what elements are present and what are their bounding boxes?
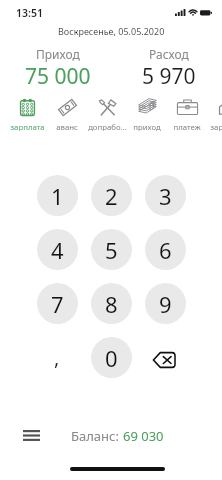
staticText: 9 — [159, 289, 172, 319]
staticText: 4 — [51, 235, 64, 265]
button[interactable]: 8 — [91, 283, 132, 324]
staticText: 13:51 — [16, 6, 43, 20]
button[interactable]: 9 — [145, 283, 186, 324]
staticText: 2 — [105, 181, 118, 211]
button[interactable]: Расход — [115, 46, 222, 91]
button[interactable]: приход — [127, 97, 167, 131]
staticText: 1 — [51, 181, 64, 211]
button[interactable]: 0 — [91, 337, 132, 378]
staticText: 69 030 — [123, 427, 164, 445]
button[interactable]: зарплата — [207, 97, 222, 131]
staticText: приход — [133, 122, 161, 131]
button[interactable]: 2 — [91, 175, 132, 216]
button[interactable]: аванс — [47, 97, 87, 131]
button[interactable]: 7 — [37, 283, 78, 324]
staticText: Баланс: — [71, 427, 123, 445]
button[interactable]: зарплата — [7, 97, 47, 131]
staticText: 5 — [105, 235, 118, 265]
button[interactable]: 1 — [37, 175, 78, 216]
button[interactable]: платеж — [167, 97, 207, 131]
staticText: Приход — [36, 46, 80, 62]
staticText: 0 — [105, 343, 118, 373]
button[interactable]: 5 — [91, 229, 132, 270]
staticText: зарплата — [10, 122, 45, 131]
button[interactable]: Баланс: — [71, 427, 164, 445]
button[interactable]: Menu — [16, 421, 46, 449]
staticText: зарплата — [210, 122, 222, 131]
staticText: 3 — [159, 181, 172, 211]
staticText: допрабо... — [88, 122, 127, 131]
staticText: 75 000 — [25, 62, 91, 91]
button[interactable]: допрабо... — [87, 97, 127, 131]
staticText: 7 — [51, 289, 64, 319]
button[interactable]: Приход — [0, 46, 115, 91]
staticText: 8 — [105, 289, 118, 319]
staticText: Расход — [149, 46, 189, 62]
button[interactable]: 3 — [145, 175, 186, 216]
button[interactable]: 6 — [145, 229, 186, 270]
staticText: , — [54, 344, 60, 371]
staticText: аванс — [56, 122, 78, 131]
button[interactable]: 4 — [37, 229, 78, 270]
staticText: 6 — [159, 235, 172, 265]
staticText: платеж — [173, 122, 201, 131]
staticText: Воскресенье, 05.05.2020 — [58, 25, 165, 37]
staticText: 5 970 — [142, 62, 196, 91]
button[interactable]: , — [37, 337, 77, 377]
button[interactable]: Backspace — [145, 337, 186, 378]
